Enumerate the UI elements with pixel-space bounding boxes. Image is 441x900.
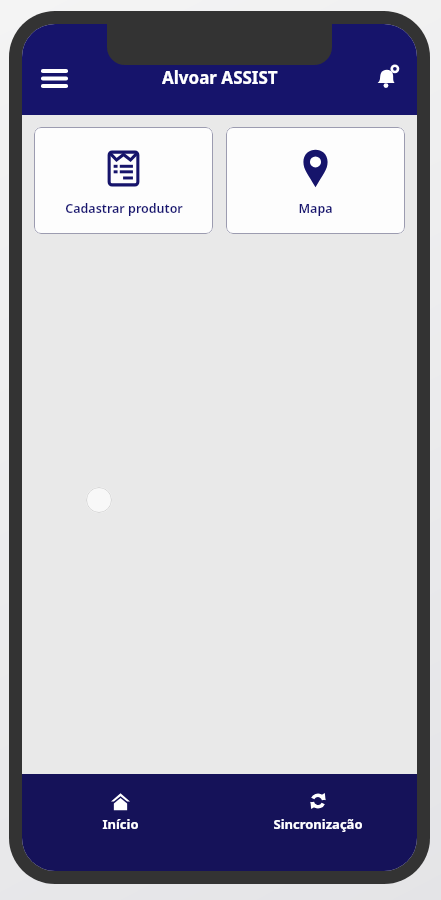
button[interactable]: Open navigation menu [30, 54, 78, 102]
button[interactable]: Início [22, 774, 219, 871]
button[interactable]: Sincronização [219, 774, 417, 871]
staticText: Início [102, 815, 139, 833]
staticText: Alvoar ASSIST [162, 66, 278, 89]
staticText: Cadastrar produtor [65, 200, 183, 217]
staticText: Sincronização [273, 815, 363, 833]
button[interactable]: Mapa [226, 127, 405, 234]
button[interactable]: Cadastrar produtor [34, 127, 213, 234]
staticText: Mapa [298, 200, 333, 217]
button[interactable]: Notifications, 0 new [363, 54, 409, 100]
